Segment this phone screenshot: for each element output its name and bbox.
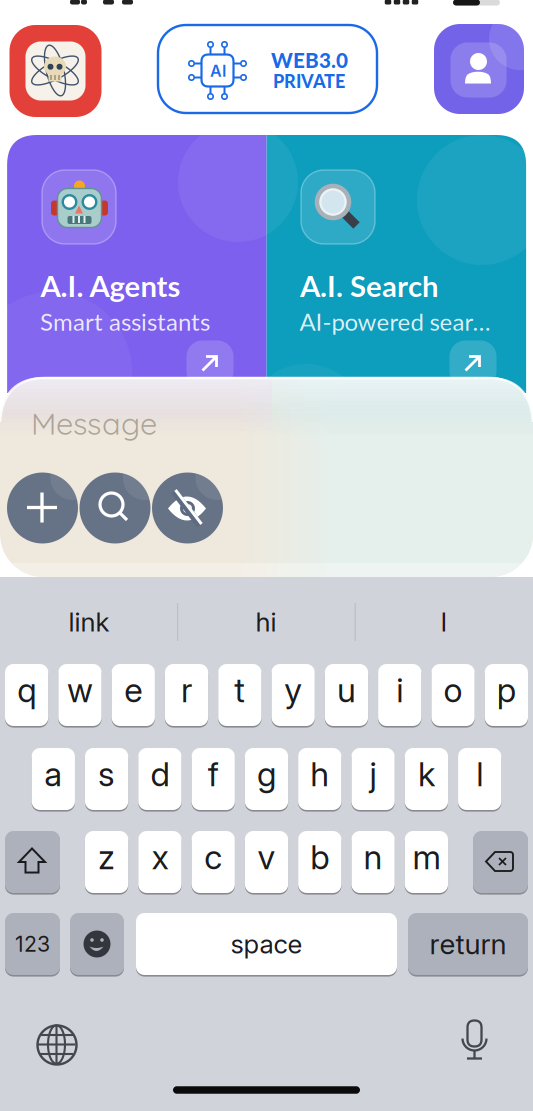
staticText: AI bbox=[210, 61, 226, 81]
staticText: space bbox=[230, 928, 302, 960]
staticText: k bbox=[418, 754, 435, 794]
staticText: A.I. Search bbox=[300, 268, 439, 303]
button[interactable]: Profile bbox=[434, 24, 524, 114]
staticText: link bbox=[68, 606, 109, 638]
button[interactable]: r bbox=[165, 663, 208, 727]
staticText: u bbox=[337, 670, 356, 710]
button[interactable]: k bbox=[405, 747, 448, 811]
button[interactable]: Search bbox=[79, 472, 150, 543]
button[interactable]: e bbox=[112, 663, 155, 727]
button[interactable]: m bbox=[405, 830, 448, 894]
staticText: b bbox=[310, 837, 329, 877]
button[interactable]: Delete bbox=[473, 830, 528, 894]
staticText: A.I. Agents bbox=[40, 268, 180, 303]
button[interactable]: return bbox=[408, 912, 528, 976]
button[interactable]: x bbox=[138, 830, 182, 894]
staticText: return bbox=[429, 927, 506, 961]
staticText: x bbox=[151, 837, 168, 877]
button[interactable]: l bbox=[458, 747, 501, 811]
button[interactable]: a bbox=[32, 747, 75, 811]
button[interactable]: p bbox=[485, 663, 528, 727]
button[interactable]: space bbox=[136, 912, 397, 976]
button[interactable]: 123 bbox=[5, 912, 60, 976]
button[interactable]: b bbox=[298, 830, 341, 894]
staticText: Message bbox=[31, 404, 157, 442]
button[interactable]: n bbox=[351, 830, 395, 894]
button[interactable]: Shift bbox=[5, 830, 60, 894]
staticText: n bbox=[364, 837, 383, 877]
button[interactable]: Hide bbox=[152, 472, 223, 543]
button[interactable]: f bbox=[191, 747, 235, 811]
staticText: 123 bbox=[15, 931, 50, 957]
staticText: q bbox=[17, 670, 36, 710]
button[interactable]: Open bbox=[186, 340, 233, 387]
staticText: I bbox=[440, 606, 447, 638]
staticText: o bbox=[443, 670, 462, 710]
staticText: t bbox=[234, 670, 245, 710]
button[interactable]: h bbox=[298, 747, 341, 811]
staticText: e bbox=[124, 670, 142, 710]
button[interactable]: WEB3.0 Private bbox=[158, 25, 377, 113]
staticText: i bbox=[396, 670, 403, 710]
staticText: hi bbox=[255, 606, 276, 638]
button[interactable]: d bbox=[138, 747, 181, 811]
staticText: w bbox=[67, 670, 93, 710]
button[interactable]: A.I. Agents — Smart assistants bbox=[7, 135, 266, 377]
staticText: Smart assistants bbox=[40, 307, 210, 336]
button[interactable]: g bbox=[245, 747, 288, 811]
staticText: f bbox=[208, 754, 219, 794]
button[interactable]: A.I. Search — AI-powered search bbox=[266, 135, 526, 377]
button[interactable]: Emoji bbox=[70, 912, 124, 976]
button[interactable]: s bbox=[85, 747, 128, 811]
staticText: AI-powered sear… bbox=[299, 307, 490, 336]
staticText: p bbox=[497, 670, 516, 710]
button[interactable]: v bbox=[245, 830, 288, 894]
button[interactable]: o bbox=[431, 663, 475, 727]
staticText: h bbox=[310, 754, 329, 794]
staticText: j bbox=[370, 754, 377, 794]
staticText: c bbox=[204, 837, 222, 877]
button[interactable]: t bbox=[218, 663, 261, 727]
staticText: d bbox=[150, 754, 169, 794]
staticText: y bbox=[284, 670, 302, 710]
button[interactable]: y bbox=[271, 663, 315, 727]
button[interactable]: App icon bbox=[9, 25, 101, 117]
staticText: m bbox=[412, 837, 440, 877]
staticText: v bbox=[257, 837, 275, 877]
button[interactable]: w bbox=[58, 663, 102, 727]
staticText: s bbox=[98, 754, 115, 794]
staticText: WEB3.0 bbox=[271, 48, 348, 72]
staticText: r bbox=[181, 670, 192, 710]
button[interactable]: j bbox=[351, 747, 395, 811]
staticText: z bbox=[98, 837, 115, 877]
button[interactable]: Open bbox=[449, 340, 496, 387]
staticText: PRIVATE bbox=[273, 70, 345, 92]
button[interactable]: z bbox=[85, 830, 128, 894]
button[interactable]: Dictation bbox=[453, 1019, 497, 1067]
button[interactable]: Add bbox=[7, 472, 78, 543]
button[interactable]: i bbox=[378, 663, 421, 727]
staticText: l bbox=[476, 754, 483, 794]
staticText: a bbox=[44, 754, 62, 794]
staticText: g bbox=[257, 754, 276, 794]
button[interactable]: u bbox=[325, 663, 368, 727]
button[interactable]: c bbox=[192, 830, 235, 894]
button[interactable]: Next keyboard bbox=[35, 1023, 79, 1067]
button[interactable]: q bbox=[5, 663, 48, 727]
